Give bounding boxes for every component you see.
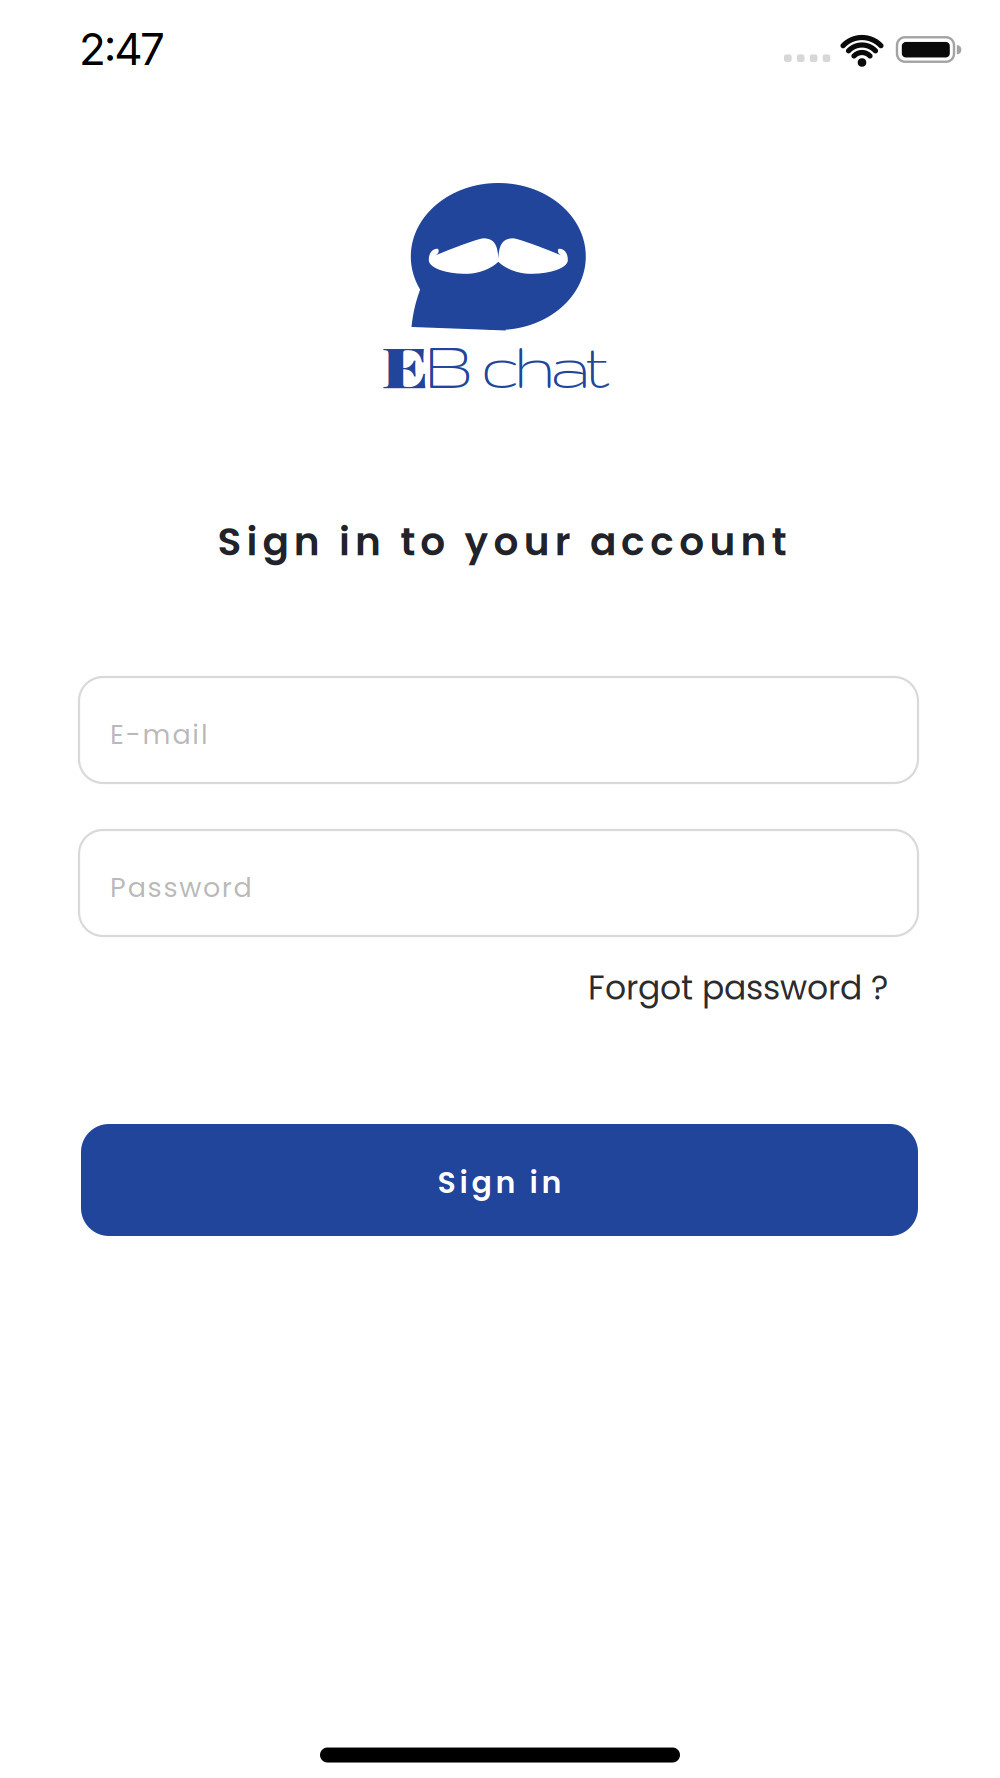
staticText: chat: [481, 331, 609, 400]
button[interactable]: Password: [79, 830, 918, 936]
staticText: Sign in to your account: [217, 514, 787, 569]
staticText: E: [387, 327, 424, 402]
staticText: S i g n i n: [437, 1161, 561, 1204]
button[interactable]: E-mail: [79, 677, 918, 783]
staticText: Password: [110, 869, 252, 906]
staticText: B: [425, 331, 474, 400]
staticText: Forgot password ?: [588, 965, 888, 1011]
button[interactable]: Forgot password ?: [588, 965, 888, 1011]
staticText: E-mail: [110, 716, 208, 753]
staticText: 2:47: [79, 22, 165, 76]
button[interactable]: S i g n i n: [81, 1124, 918, 1236]
